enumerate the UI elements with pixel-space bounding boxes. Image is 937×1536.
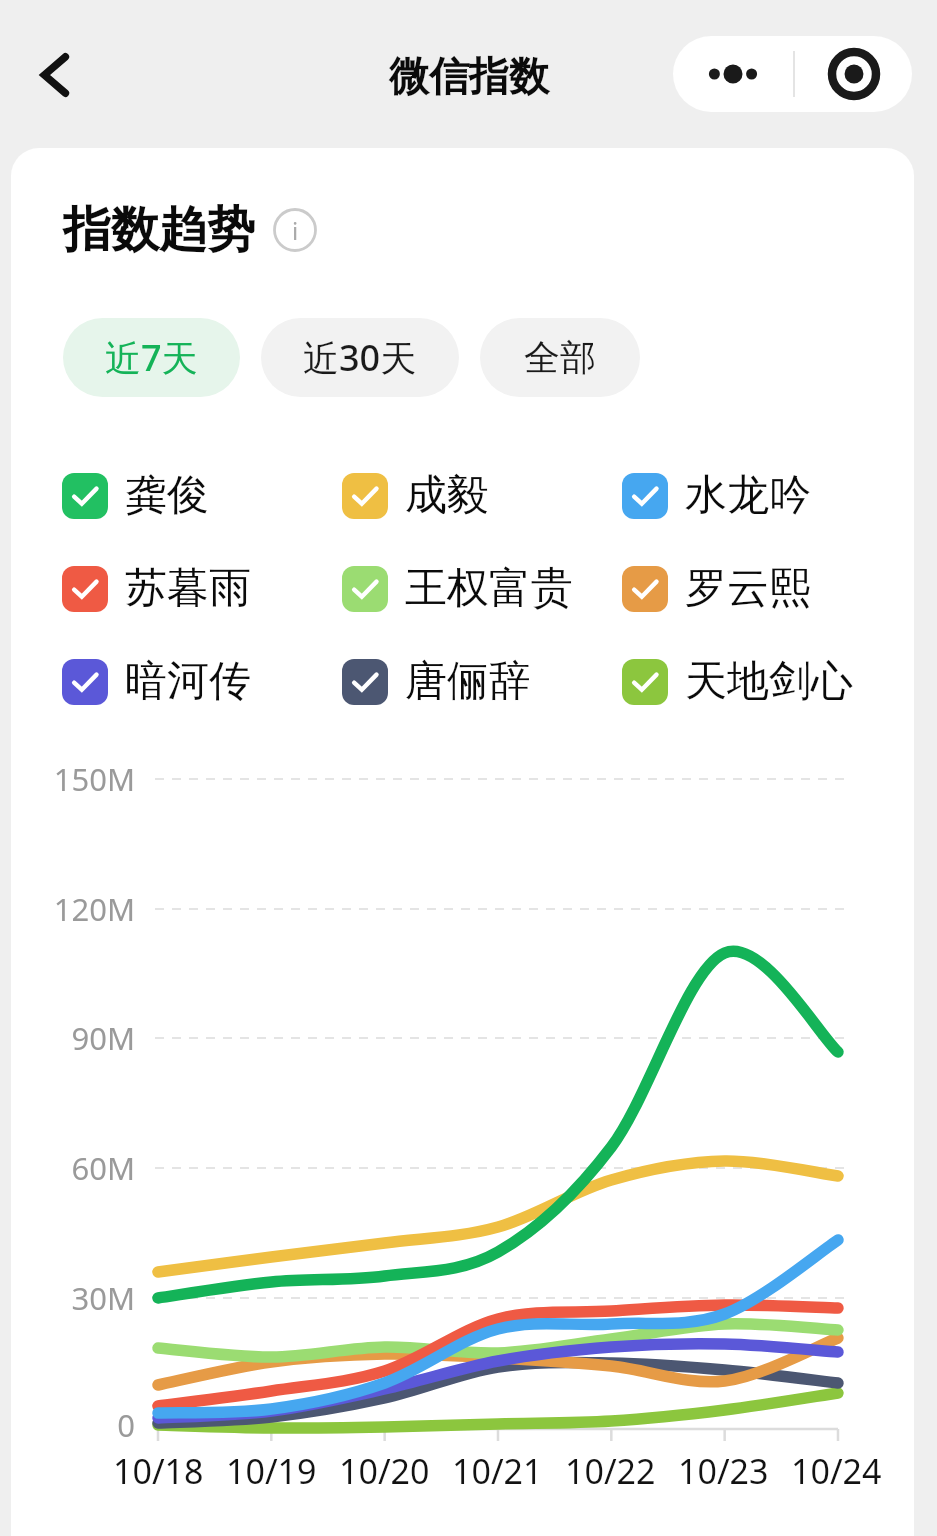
staticText: 近7天 (105, 333, 198, 382)
button[interactable]: More options (673, 36, 793, 112)
button[interactable]: 近30天 (261, 318, 459, 397)
button[interactable]: 暗河传 (62, 635, 342, 728)
staticText: 指数趋势 (63, 200, 255, 260)
staticText: 全部 (524, 335, 596, 380)
staticText: 10/21 (452, 1448, 543, 1494)
staticText: 天地剑心 (685, 655, 853, 708)
staticText: 0 (11, 1404, 135, 1446)
staticText: 唐俪辞 (405, 655, 531, 708)
button[interactable]: 龚俊 (62, 449, 342, 542)
button[interactable]: 唐俪辞 (342, 635, 622, 728)
staticText: 成毅 (405, 469, 489, 522)
staticText: 苏暮雨 (125, 562, 251, 615)
staticText: 150M (11, 758, 135, 800)
button[interactable]: Back (22, 40, 92, 110)
staticText: 10/19 (226, 1448, 317, 1494)
staticText: 10/22 (565, 1448, 656, 1494)
button[interactable]: 苏暮雨 (62, 542, 342, 635)
staticText: 近30天 (303, 333, 417, 382)
staticText: 120M (11, 888, 135, 930)
staticText: 10/20 (339, 1448, 430, 1494)
button[interactable]: 罗云熙 (622, 542, 902, 635)
staticText: 10/23 (678, 1448, 769, 1494)
staticText: 60M (11, 1147, 135, 1189)
button[interactable]: 近7天 (63, 318, 240, 397)
staticText: 暗河传 (125, 655, 251, 708)
staticText: i (292, 214, 299, 247)
staticText: 微信指数 (389, 51, 549, 101)
button[interactable]: 全部 (480, 318, 640, 397)
button[interactable]: 成毅 (342, 449, 622, 542)
button[interactable]: Close mini program (795, 36, 912, 112)
staticText: 龚俊 (125, 469, 209, 522)
staticText: 30M (11, 1277, 135, 1319)
button[interactable]: 水龙吟 (622, 449, 902, 542)
button[interactable]: 天地剑心 (622, 635, 902, 728)
staticText: 王权富贵 (405, 562, 573, 615)
button[interactable]: 王权富贵 (342, 542, 622, 635)
staticText: 90M (11, 1017, 135, 1059)
button[interactable]: Info (273, 208, 317, 252)
staticText: 10/24 (791, 1448, 882, 1494)
staticText: 水龙吟 (685, 469, 811, 522)
staticText: 10/18 (113, 1448, 204, 1494)
staticText: 罗云熙 (685, 562, 811, 615)
